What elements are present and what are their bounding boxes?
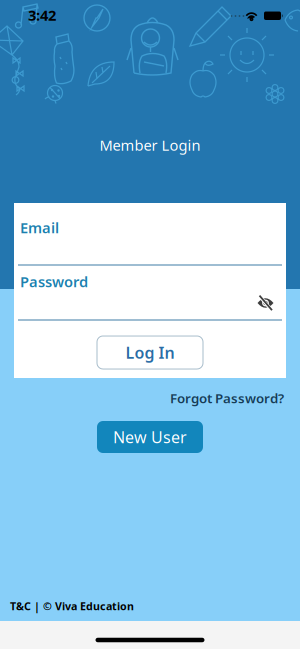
staticText: T&C | © Viva Education — [10, 599, 134, 613]
staticText: Password — [20, 272, 88, 291]
staticText: 3:42 — [28, 5, 56, 25]
staticText: Forgot Password? — [170, 389, 284, 407]
staticText: Email — [20, 218, 59, 237]
button[interactable]: Show password — [256, 294, 274, 312]
staticText: Member Login — [99, 135, 200, 155]
button[interactable]: Log In — [97, 336, 203, 369]
staticText: Log In — [125, 342, 174, 363]
button[interactable]: New User — [97, 421, 203, 453]
button[interactable]: Forgot Password? — [170, 389, 284, 407]
staticText: New User — [113, 426, 187, 448]
